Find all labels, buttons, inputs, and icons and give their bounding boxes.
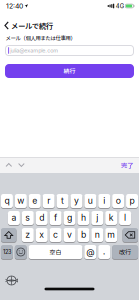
staticText: c [53, 229, 58, 240]
button[interactable]: l [119, 211, 131, 225]
button[interactable]: Next field [19, 164, 24, 166]
button[interactable]: w [15, 194, 27, 208]
staticText: x [39, 229, 44, 240]
button[interactable]: u [84, 194, 96, 208]
button[interactable]: m [105, 228, 117, 242]
staticText: 完了 [121, 160, 133, 170]
button[interactable]: Space [29, 245, 82, 259]
button[interactable]: y [70, 194, 82, 208]
button[interactable]: i [98, 194, 110, 208]
staticText: q [4, 195, 9, 206]
button[interactable]: d [36, 211, 48, 225]
staticText: v [67, 229, 72, 240]
staticText: 続行 [63, 67, 75, 75]
staticText: y [74, 195, 79, 206]
staticText: . [103, 245, 106, 257]
staticText: s [25, 212, 30, 223]
staticText: @ [86, 247, 94, 257]
button[interactable]: period [98, 245, 110, 259]
staticText: 4G [116, 2, 124, 10]
button[interactable]: h [77, 211, 89, 225]
button[interactable]: Previous field [6, 164, 12, 166]
staticText: r [47, 195, 50, 206]
staticText: t [61, 195, 64, 206]
button[interactable]: o [112, 194, 124, 208]
button[interactable]: n [91, 228, 103, 242]
button[interactable]: e [29, 194, 41, 208]
button[interactable]: f [50, 211, 62, 225]
staticText: g [67, 212, 72, 223]
staticText: w [17, 195, 24, 206]
button[interactable]: p [126, 194, 138, 208]
button[interactable]: v [63, 228, 75, 242]
staticText: o [116, 195, 121, 206]
staticText: n [95, 229, 100, 240]
staticText: m [107, 229, 115, 240]
staticText: k [109, 212, 114, 223]
button[interactable]: a [8, 211, 20, 225]
staticText: e [32, 195, 37, 206]
staticText: z [25, 229, 30, 240]
button[interactable]: Delete [122, 228, 138, 242]
button[interactable]: z [22, 228, 34, 242]
staticText: 12:40 [6, 2, 23, 10]
button[interactable]: Done [121, 160, 133, 170]
button[interactable]: x [36, 228, 48, 242]
button[interactable]: g [63, 211, 75, 225]
staticText: 空白 [50, 248, 62, 256]
staticText: メール（個人用または仕事用） [5, 34, 75, 42]
button[interactable]: メール（個人用または仕事用） [0, 45, 139, 56]
button[interactable]: c [50, 228, 62, 242]
button[interactable]: k [105, 211, 117, 225]
button[interactable]: j [91, 211, 103, 225]
staticText: h [81, 212, 86, 223]
staticText: メールで続行 [11, 20, 53, 31]
staticText: 改行 [119, 248, 131, 256]
staticText: b [81, 229, 86, 240]
button[interactable]: r [43, 194, 55, 208]
button[interactable]: Numbers [1, 245, 13, 259]
button[interactable]: b [77, 228, 89, 242]
button[interactable]: Return [112, 245, 138, 259]
staticText: p [130, 195, 135, 206]
staticText: a [11, 212, 16, 223]
button[interactable]: t [57, 194, 69, 208]
staticText: i [103, 195, 105, 206]
button[interactable]: s [22, 211, 34, 225]
staticText: 123 [3, 249, 11, 255]
staticText: f [54, 212, 57, 223]
staticText: d [39, 212, 44, 223]
button[interactable]: Back [5, 20, 53, 31]
staticText: julia@example.com [10, 47, 58, 54]
button[interactable]: Next keyboard [7, 276, 16, 285]
button[interactable]: at [84, 245, 96, 259]
button[interactable]: Emoji [15, 245, 27, 259]
staticText: l [124, 212, 126, 223]
button[interactable]: Shift [1, 228, 16, 242]
button[interactable]: 続行 [0, 64, 139, 78]
staticText: u [88, 195, 93, 206]
button[interactable]: q [1, 194, 13, 208]
staticText: j [96, 212, 98, 223]
